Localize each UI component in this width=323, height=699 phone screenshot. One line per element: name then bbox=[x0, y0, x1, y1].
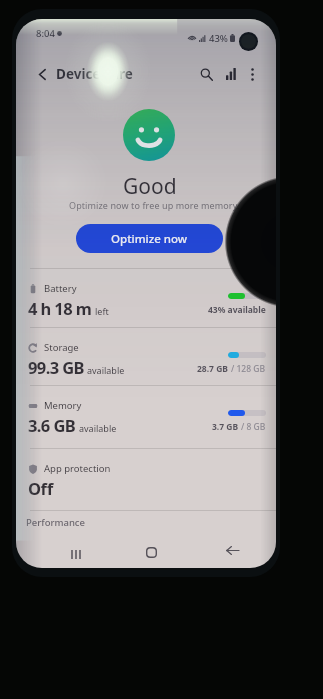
button[interactable]: Memory bbox=[16, 388, 276, 446]
button[interactable]: Home bbox=[131, 534, 171, 568]
button[interactable]: Usage statistics bbox=[218, 55, 244, 93]
staticText: 4 h 18 m bbox=[28, 297, 92, 319]
button[interactable]: Storage bbox=[16, 330, 276, 388]
button[interactable]: Search bbox=[193, 55, 219, 93]
staticText: App protection bbox=[44, 462, 111, 475]
button[interactable]: Recents bbox=[56, 534, 96, 568]
staticText: / 128 GB bbox=[231, 363, 266, 375]
staticText: / 8 GB bbox=[241, 421, 266, 433]
staticText: 43% bbox=[209, 32, 228, 45]
staticText: Device care bbox=[56, 65, 133, 83]
staticText: 99.3 GB bbox=[28, 356, 84, 378]
staticText: 3.6 GB bbox=[28, 414, 76, 436]
staticText: 3.7 GB bbox=[212, 421, 241, 433]
button[interactable]: More options bbox=[239, 55, 265, 93]
button[interactable]: App protection bbox=[16, 451, 276, 509]
button[interactable]: Optimize now bbox=[76, 224, 223, 253]
staticText: available bbox=[87, 364, 125, 376]
staticText: Battery bbox=[44, 282, 77, 295]
staticText: 28.7 GB bbox=[197, 363, 231, 375]
staticText: Optimize now bbox=[111, 231, 188, 247]
staticText: Memory bbox=[44, 399, 82, 412]
staticText: left bbox=[95, 305, 109, 317]
staticText: Off bbox=[28, 477, 53, 499]
button[interactable]: Navigate up bbox=[29, 55, 55, 93]
staticText: Storage bbox=[44, 341, 79, 354]
staticText: 43% available bbox=[208, 304, 266, 316]
staticText: Performance bbox=[26, 516, 85, 529]
staticText: available bbox=[79, 422, 117, 434]
staticText: 8:04 bbox=[36, 27, 55, 40]
staticText: Optimize now to free up more memory. bbox=[69, 199, 240, 211]
button[interactable]: Battery bbox=[16, 271, 276, 329]
staticText: Good bbox=[123, 172, 177, 201]
button[interactable]: Back bbox=[212, 534, 252, 568]
